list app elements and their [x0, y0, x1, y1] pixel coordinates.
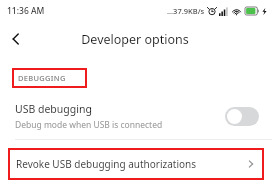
button[interactable]: Revoke USB debugging authorizations: [8, 148, 264, 180]
button[interactable]: Back: [0, 23, 32, 55]
button[interactable]: USB debugging toggle: [225, 107, 259, 126]
staticText: ...37.9KB/s: [167, 6, 205, 16]
staticText: USB debugging: [15, 102, 92, 116]
button[interactable]: USB debugging: [0, 98, 272, 134]
staticText: Developer options: [81, 31, 189, 48]
staticText: 11:36 AM: [7, 5, 45, 17]
staticText: Revoke USB debugging authorizations: [16, 157, 246, 171]
staticText: DEBUGGING: [18, 73, 66, 83]
staticText: Debug mode when USB is connected: [15, 119, 163, 131]
